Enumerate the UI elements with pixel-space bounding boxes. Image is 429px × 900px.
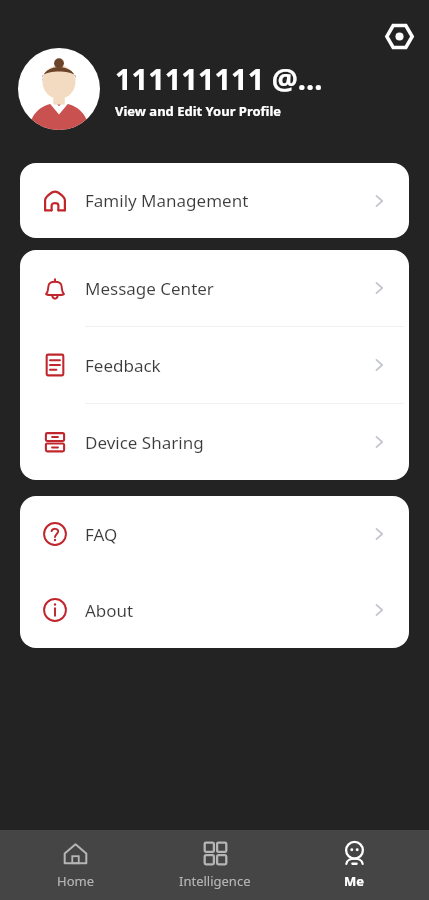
button[interactable]: 111111111 @… <box>18 48 411 130</box>
staticText: Message Center <box>85 277 371 300</box>
button[interactable]: Intelligence <box>150 830 280 900</box>
button[interactable]: Family Management <box>20 163 409 238</box>
button[interactable]: Settings <box>381 18 417 54</box>
staticText: About <box>85 599 371 622</box>
button[interactable]: Home <box>10 830 140 900</box>
staticText: Me <box>344 872 365 890</box>
staticText: Intelligence <box>179 872 251 890</box>
button[interactable]: Me <box>289 830 419 900</box>
button[interactable]: FAQ <box>20 496 409 572</box>
button[interactable]: Message Center <box>20 250 409 326</box>
button[interactable]: Device Sharing <box>20 404 409 480</box>
staticText: Feedback <box>85 354 371 377</box>
staticText: View and Edit Your Profile <box>115 102 282 120</box>
button[interactable]: Feedback <box>20 327 409 403</box>
staticText: FAQ <box>85 523 371 546</box>
button[interactable]: About <box>20 572 409 648</box>
staticText: 111111111 @… <box>115 59 323 98</box>
staticText: Family Management <box>85 189 371 212</box>
staticText: Home <box>57 872 94 890</box>
staticText: Device Sharing <box>85 431 371 454</box>
